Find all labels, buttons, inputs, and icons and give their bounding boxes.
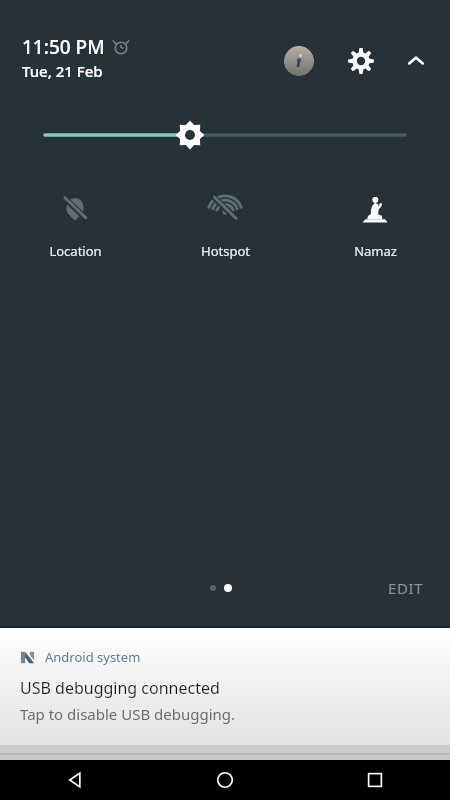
staticText: Hotspot — [201, 242, 250, 260]
button[interactable]: Brightness — [0, 112, 450, 158]
staticText: Location — [49, 242, 102, 260]
staticText: Tue, 21 Feb — [22, 61, 103, 81]
button[interactable]: Home — [150, 760, 300, 800]
button[interactable]: 11:50 PM — [20, 32, 131, 83]
staticText: Tap to disable USB debugging. — [20, 704, 236, 724]
button[interactable]: Android system — [0, 628, 450, 745]
button[interactable]: Location — [0, 186, 150, 286]
staticText: Namaz — [354, 242, 397, 260]
staticText: 11:50 PM — [22, 34, 105, 60]
button[interactable]: Collapse — [400, 45, 432, 77]
button[interactable]: EDIT — [380, 572, 432, 604]
button[interactable]: Hotspot — [150, 186, 300, 286]
button[interactable]: Recents — [300, 760, 450, 800]
button[interactable]: Back — [0, 760, 150, 800]
button[interactable]: Namaz — [300, 186, 450, 286]
staticText: Android system — [45, 648, 141, 666]
button[interactable]: Settings — [344, 44, 378, 78]
staticText: EDIT — [388, 578, 424, 598]
staticText: USB debugging connected — [20, 677, 220, 699]
button[interactable]: User profile — [284, 46, 314, 76]
